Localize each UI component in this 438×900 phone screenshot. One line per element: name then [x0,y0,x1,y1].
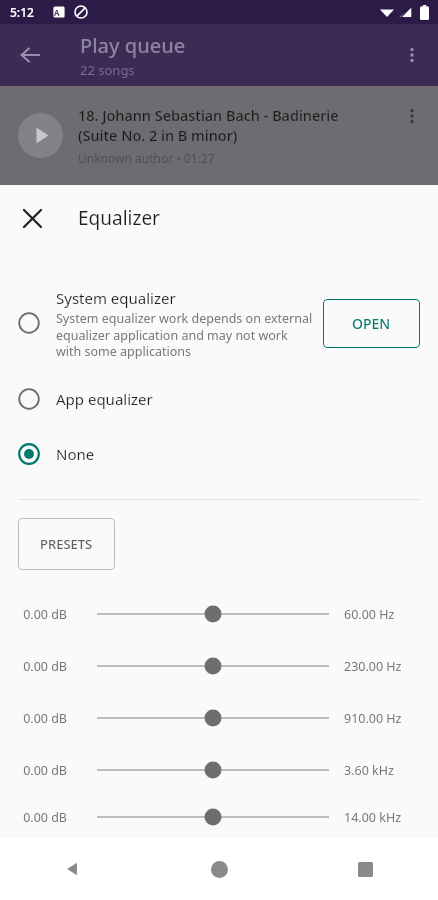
staticText: 22 songs [80,61,135,79]
staticText: Equalizer [78,205,160,231]
staticText: 3.60 kHz [344,762,394,779]
button[interactable]: More options [392,35,432,75]
button[interactable]: 0.00 dB [0,588,438,640]
button[interactable]: 0.00 dB [0,744,438,796]
button[interactable]: App equalizer [0,371,438,426]
staticText: A [54,7,60,18]
staticText: 0.00 dB [8,809,67,826]
staticText: 0.00 dB [8,606,67,623]
button[interactable]: 0.00 dB [0,640,438,692]
button[interactable]: Track options [392,96,432,136]
staticText: 18. Johann Sebastian Bach - Badinerie (S… [78,105,378,145]
button[interactable]: Close [10,196,54,240]
button[interactable]: None [0,426,438,481]
staticText: 0.00 dB [8,658,67,675]
staticText: System equalizer [56,288,176,308]
button[interactable]: Back [0,838,146,900]
button[interactable]: OPEN [323,299,420,348]
staticText: OPEN [352,314,391,333]
button[interactable]: Home [146,838,292,900]
button[interactable]: 0.00 dB [0,796,438,838]
button[interactable]: 0.00 dB [0,692,438,744]
staticText: App equalizer [56,389,153,409]
staticText: Unknown author • 01:27 [78,150,215,166]
staticText: 5:12 [10,4,34,20]
staticText: Play queue [80,32,186,59]
staticText: None [56,444,95,464]
button[interactable]: System equalizer [0,275,438,371]
button[interactable]: PRESETS [18,518,115,570]
staticText: 14.00 kHz [344,809,402,826]
staticText: 60.00 Hz [344,606,395,623]
staticText: System equalizer work depends on externa… [56,310,315,359]
staticText: 0.00 dB [8,710,67,727]
staticText: 910.00 Hz [344,710,402,727]
staticText: PRESETS [40,535,93,553]
staticText: 230.00 Hz [344,658,402,675]
staticText: 0.00 dB [8,762,67,779]
button[interactable]: Back [8,33,52,77]
button[interactable]: Recent apps [292,838,438,900]
